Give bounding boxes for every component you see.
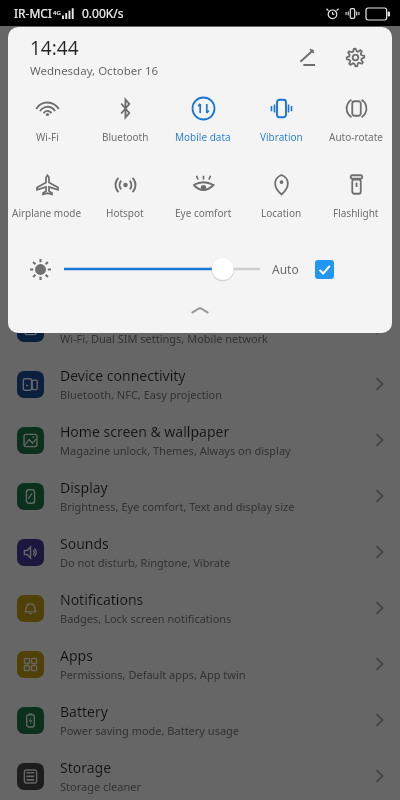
staticText: Wednesday, October 16 [30, 63, 159, 79]
staticText: Storage cleaner [60, 779, 142, 794]
button[interactable]: Apps [0, 636, 400, 692]
staticText: Wireless & networks [60, 310, 194, 329]
staticText: Hotspot [106, 206, 144, 220]
button[interactable]: Home screen & wallpaper [0, 412, 400, 468]
staticText: Home screen & wallpaper [60, 422, 230, 441]
button[interactable]: Display [0, 468, 400, 524]
staticText: Device connectivity [60, 366, 186, 385]
button[interactable]: Airplane mode [8, 163, 86, 241]
staticText: Auto-rotate [329, 130, 383, 144]
staticText: Power saving mode, Battery usage [60, 723, 240, 738]
button[interactable]: Location [242, 163, 320, 241]
button[interactable]: Auto brightness [309, 254, 339, 284]
button[interactable]: Brightness [64, 249, 260, 289]
staticText: Bluetooth [102, 130, 149, 144]
staticText: Storage [60, 758, 112, 777]
staticText: 0.00K/s [82, 5, 124, 21]
button[interactable]: Hotspot [86, 163, 164, 241]
button[interactable]: Edit [288, 38, 326, 76]
staticText: Auto [272, 261, 299, 277]
button[interactable]: Storage [0, 748, 400, 800]
staticText: Apps [60, 646, 93, 665]
button[interactable]: Device connectivity [0, 356, 400, 412]
staticText: Sounds [60, 534, 109, 553]
staticText: Airplane mode [12, 206, 82, 220]
staticText: Badges, Lock screen notifications [60, 611, 232, 626]
staticText: 14:44 [30, 35, 79, 61]
button[interactable]: Auto-rotate [320, 87, 392, 163]
button[interactable]: Notifications [0, 580, 400, 636]
staticText: Do not disturb, Ringtone, Vibrate [60, 555, 231, 570]
button[interactable]: Eye comfort [164, 163, 242, 241]
button[interactable]: Settings [336, 38, 374, 76]
staticText: Display [60, 478, 108, 497]
button[interactable]: Flashlight [320, 163, 392, 241]
staticText: Brightness, Eye comfort, Text and displa… [60, 499, 295, 514]
staticText: IR-MCI [14, 5, 52, 21]
staticText: Wi-Fi [36, 130, 59, 144]
staticText: Eye comfort [175, 206, 232, 220]
button[interactable]: Mobile data [164, 87, 242, 163]
staticText: Mobile data [175, 130, 231, 144]
button[interactable]: Wi-Fi [8, 87, 86, 163]
button[interactable]: Vibration [242, 87, 320, 163]
button[interactable]: Sounds [0, 524, 400, 580]
staticText: Wi-Fi, Dual SIM settings, Mobile network [60, 331, 268, 346]
staticText: Battery [60, 702, 108, 721]
staticText: Bluetooth, NFC, Easy projection [60, 387, 223, 402]
staticText: Notifications [60, 590, 144, 609]
button[interactable]: Bluetooth [86, 87, 164, 163]
button[interactable]: Collapse [8, 297, 392, 323]
staticText: Magazine unlock, Themes, Always on displ… [60, 443, 291, 458]
staticText: Vibration [260, 130, 303, 144]
staticText: 4G [53, 9, 61, 17]
button[interactable]: Battery [0, 692, 400, 748]
staticText: Location [261, 206, 302, 220]
button[interactable]: Wireless & networks [0, 300, 400, 356]
staticText: Permissions, Default apps, App twin [60, 667, 246, 682]
staticText: Flashlight [333, 206, 379, 220]
